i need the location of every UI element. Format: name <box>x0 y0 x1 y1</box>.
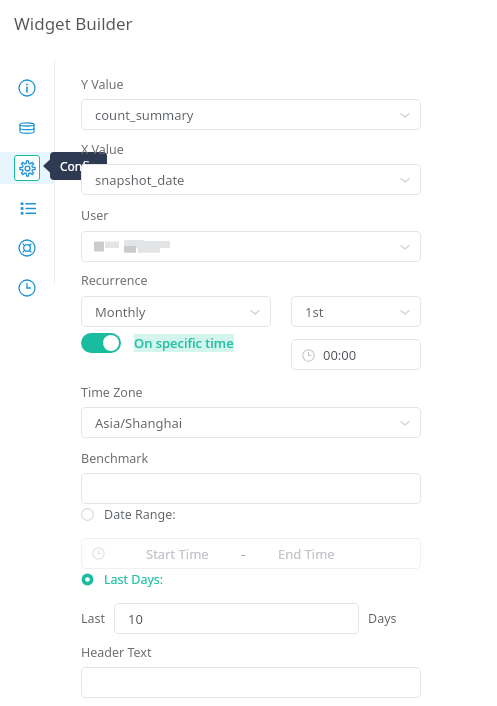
button[interactable]: Monthly <box>81 296 271 327</box>
staticText: Date Range: <box>104 506 176 523</box>
staticText: snapshot_date <box>95 171 185 189</box>
button[interactable] <box>81 231 421 262</box>
staticText: Last Days: <box>104 571 164 588</box>
staticText: End Time <box>278 545 335 563</box>
staticText: Y Value <box>81 76 124 93</box>
staticText: 10 <box>128 610 143 628</box>
staticText: Config <box>60 158 97 174</box>
button[interactable]: Start Time <box>81 538 421 569</box>
staticText: Start Time <box>146 545 209 563</box>
staticText: - <box>241 545 246 563</box>
staticText: On specific time <box>134 334 234 352</box>
staticText: 00:00 <box>323 346 357 364</box>
button[interactable] <box>81 473 421 504</box>
staticText: User <box>81 207 109 224</box>
staticText: Benchmark <box>81 450 149 467</box>
button[interactable]: snapshot_date <box>81 164 421 195</box>
button[interactable]: Data source <box>0 112 54 144</box>
button[interactable] <box>81 667 421 698</box>
button[interactable]: 00:00 <box>291 339 421 370</box>
staticText: count_summary <box>95 106 194 124</box>
button[interactable]: Asia/Shanghai <box>81 407 421 438</box>
staticText: Asia/Shanghai <box>95 414 183 432</box>
button[interactable]: 10 <box>114 603 359 634</box>
button[interactable]: Date Range: <box>81 505 176 523</box>
button[interactable]: count_summary <box>81 99 421 130</box>
button[interactable]: Style <box>0 232 54 264</box>
button[interactable]: Last Days: <box>81 570 164 588</box>
button[interactable]: Info <box>0 72 54 104</box>
button[interactable]: 1st <box>291 296 421 327</box>
staticText: Widget Builder <box>14 12 133 35</box>
staticText: X Value <box>81 141 124 158</box>
button[interactable]: Config <box>0 152 54 184</box>
staticText: Days <box>368 610 397 627</box>
button[interactable]: Fields <box>0 192 54 224</box>
staticText: Recurrence <box>81 272 148 289</box>
staticText: 1st <box>305 303 324 321</box>
button[interactable]: Schedule <box>0 272 54 304</box>
staticText: Header Text <box>81 644 152 661</box>
button[interactable]: On specific time <box>81 332 234 354</box>
staticText: Last <box>81 610 106 627</box>
staticText: Time Zone <box>81 384 143 401</box>
staticText: Monthly <box>95 303 146 321</box>
